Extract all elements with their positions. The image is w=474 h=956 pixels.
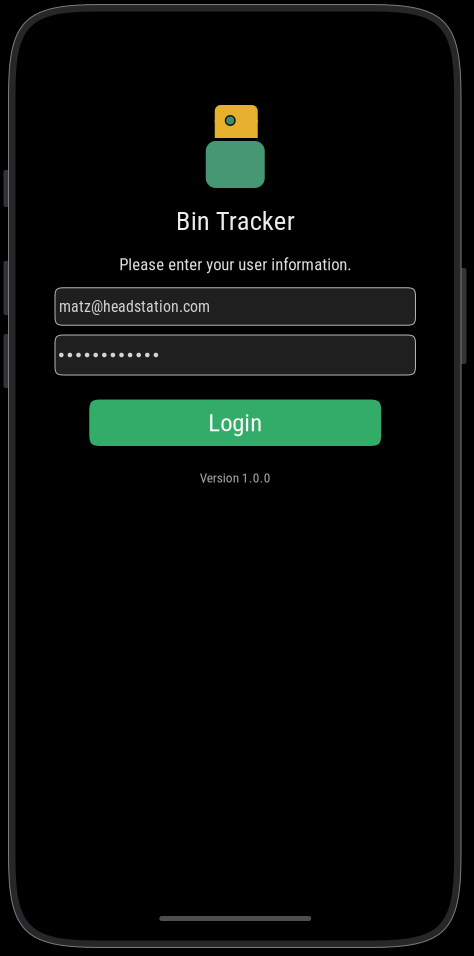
button[interactable]: matz@headstation.com bbox=[55, 288, 415, 325]
staticText: Version 1.0.0 bbox=[200, 470, 271, 486]
button[interactable] bbox=[55, 335, 415, 375]
staticText: Please enter your user information. bbox=[119, 255, 351, 274]
button[interactable]: Login bbox=[89, 399, 381, 446]
staticText: matz@headstation.com bbox=[59, 297, 210, 316]
staticText: Login bbox=[208, 408, 262, 437]
staticText: Bin Tracker bbox=[176, 205, 295, 237]
